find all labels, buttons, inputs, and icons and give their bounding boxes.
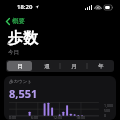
staticText: 6:00: [31, 115, 38, 120]
staticText: 歩カウント: [9, 79, 32, 85]
button[interactable]: 週: [34, 61, 59, 71]
button[interactable]: 年: [88, 61, 113, 71]
button[interactable]: 歩カウント: [4, 76, 116, 120]
staticText: 週: [44, 63, 50, 70]
button[interactable]: Back: [4, 16, 27, 26]
staticText: 歩数: [8, 29, 38, 48]
staticText: 0:00: [9, 115, 16, 120]
staticText: 概要: [12, 17, 25, 25]
staticText: 8,551: [9, 86, 38, 101]
other: Back: [6, 18, 10, 25]
staticText: 18:00: [76, 115, 85, 120]
button[interactable]: 月: [61, 61, 86, 71]
staticText: 年: [98, 63, 104, 70]
staticText: 月: [71, 63, 77, 70]
button[interactable]: 日: [7, 61, 32, 71]
staticText: 日: [17, 63, 23, 70]
staticText: 今日: [8, 49, 19, 56]
staticText: 0: [104, 113, 107, 118]
staticText: 500: [104, 108, 111, 113]
staticText: 12:00: [53, 115, 62, 120]
staticText: 18:20: [17, 3, 33, 11]
staticText: 1,000: [104, 103, 113, 108]
